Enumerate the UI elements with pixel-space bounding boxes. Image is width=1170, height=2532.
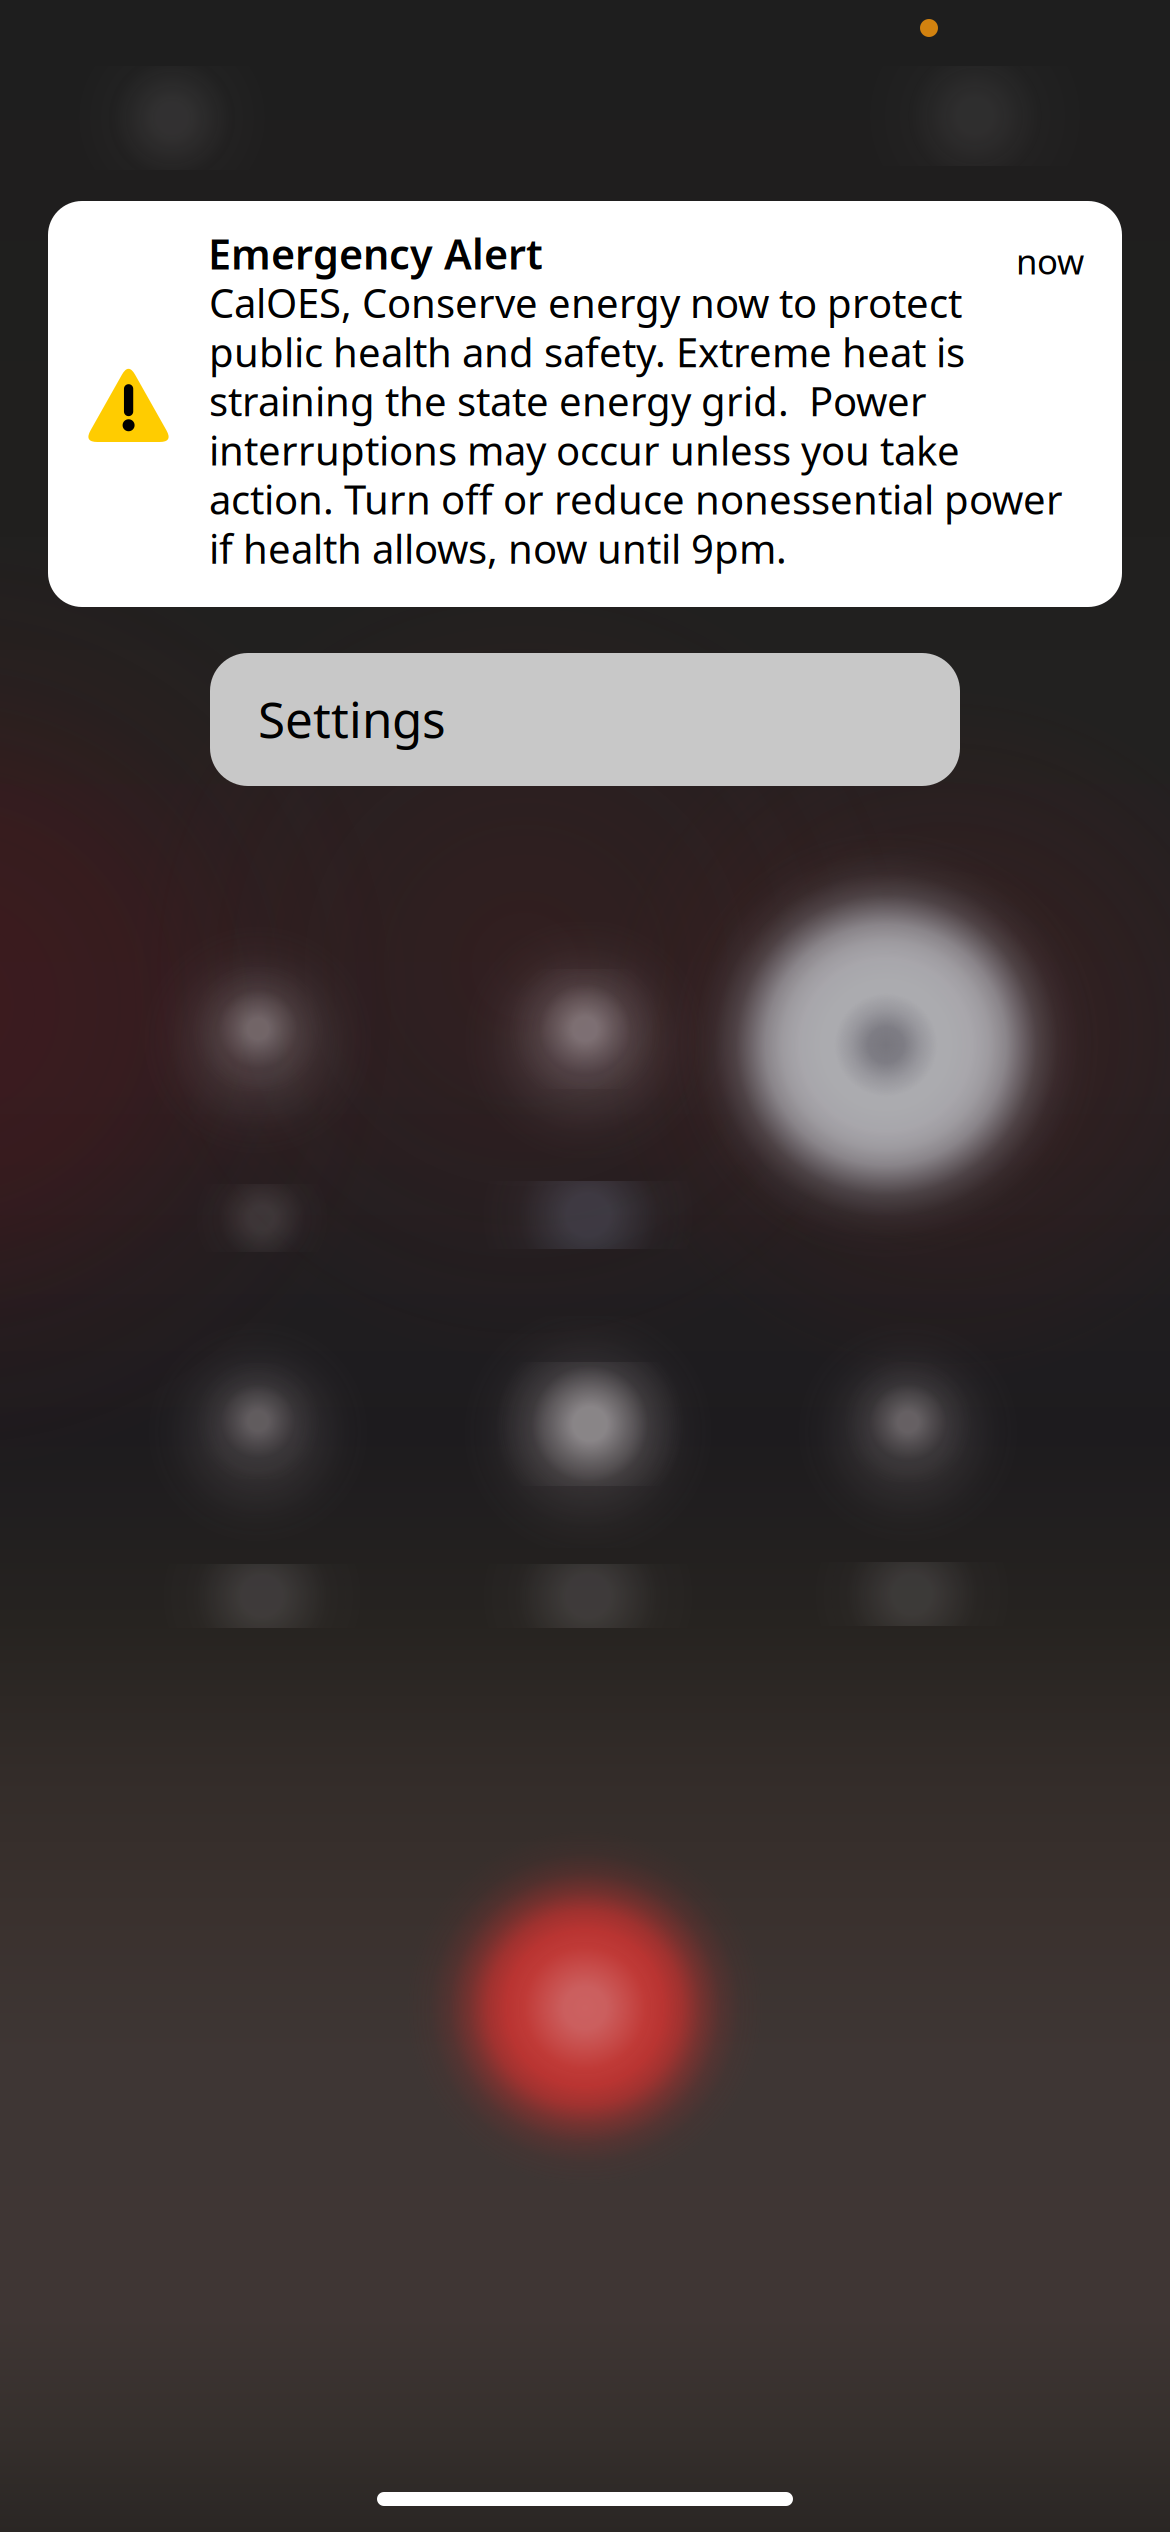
button[interactable]: Emergency Alert	[48, 201, 1122, 607]
button[interactable]: Settings	[210, 653, 960, 786]
staticText: Emergency Alert	[208, 226, 543, 281]
staticText: now	[1016, 238, 1084, 284]
staticText: CalOES, Conserve energy now to protect p…	[209, 276, 1063, 575]
staticText: Settings	[258, 686, 446, 751]
